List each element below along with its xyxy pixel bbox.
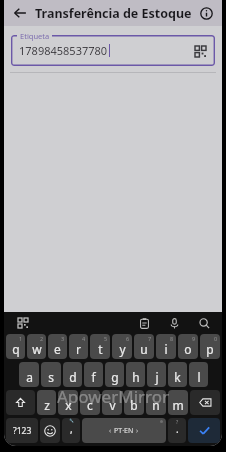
staticText: u <box>140 341 148 357</box>
staticText: 8 <box>170 335 174 342</box>
staticText: a <box>26 369 33 385</box>
staticText: w <box>32 341 42 357</box>
staticText: n <box>152 397 160 413</box>
staticText: 17898458537780 <box>19 43 108 58</box>
staticText: g <box>111 369 119 385</box>
staticText: 3 <box>61 335 65 342</box>
staticText: 6 <box>126 335 130 342</box>
staticText: c <box>87 397 93 413</box>
button[interactable]: d <box>63 362 82 387</box>
staticText: PT·EN <box>114 426 134 436</box>
button[interactable]: g <box>105 362 124 387</box>
staticText: Etiqueta <box>20 31 50 41</box>
button[interactable]: a <box>19 362 39 387</box>
button[interactable]: . <box>168 418 186 443</box>
button[interactable]: q <box>6 334 25 359</box>
staticText: 7 <box>148 335 152 342</box>
button[interactable]: l <box>189 362 208 387</box>
button[interactable]: h <box>126 362 145 387</box>
staticText: › <box>136 426 139 436</box>
button[interactable]: Voltar <box>10 3 30 23</box>
button[interactable]: Emoji <box>40 418 60 443</box>
button[interactable]: r <box>69 334 88 359</box>
staticText: , <box>70 422 73 436</box>
button[interactable]: o <box>178 334 198 359</box>
button[interactable]: Confirmar <box>188 418 220 443</box>
button[interactable]: Apagar <box>190 390 220 415</box>
button[interactable]: ?123 <box>6 418 38 443</box>
staticText: j <box>155 369 159 385</box>
button[interactable]: w <box>27 334 46 359</box>
staticText: 🔧 <box>69 418 74 423</box>
staticText: h <box>132 369 140 385</box>
staticText: q <box>12 341 20 357</box>
button[interactable]: t <box>90 334 110 359</box>
staticText: v <box>109 397 116 413</box>
button[interactable]: 17898458537780 <box>11 35 215 66</box>
staticText: p <box>206 341 214 357</box>
staticText: b <box>130 397 138 413</box>
button[interactable]: f <box>84 362 103 387</box>
staticText: 1 <box>19 335 23 342</box>
button[interactable]: n <box>146 390 166 415</box>
staticText: r <box>76 341 81 357</box>
staticText: f <box>91 369 96 385</box>
button[interactable]: j <box>147 362 166 387</box>
staticText: ? <box>176 419 179 426</box>
button[interactable]: x <box>58 390 78 415</box>
staticText: ApowerMirror <box>57 385 170 408</box>
staticText: y <box>119 341 126 357</box>
button[interactable]: u <box>134 334 154 359</box>
button[interactable]: c <box>80 390 100 415</box>
button[interactable]: i <box>156 334 176 359</box>
staticText: ?123 <box>13 425 32 437</box>
staticText: m <box>172 397 184 413</box>
button[interactable]: b <box>124 390 144 415</box>
staticText: 2 <box>40 335 44 342</box>
staticText: l <box>197 369 201 385</box>
button[interactable]: Pesquisar <box>196 315 212 331</box>
button[interactable]: p <box>200 334 220 359</box>
staticText: 0 <box>214 335 218 342</box>
staticText: d <box>69 369 77 385</box>
button[interactable]: v <box>102 390 122 415</box>
staticText: ‹ <box>109 426 112 436</box>
button[interactable]: y <box>112 334 132 359</box>
staticText: 5 <box>104 335 108 342</box>
button[interactable]: Shift <box>6 390 35 415</box>
button[interactable]: , <box>62 418 80 443</box>
button[interactable]: Espaço <box>82 418 166 443</box>
staticText: i <box>164 341 168 357</box>
button[interactable]: s <box>41 362 61 387</box>
button[interactable]: z <box>37 390 56 415</box>
button[interactable]: k <box>168 362 187 387</box>
staticText: s <box>48 369 54 385</box>
button[interactable]: Área de transferência <box>136 315 152 331</box>
staticText: e <box>54 341 61 357</box>
staticText: . <box>176 422 179 436</box>
button[interactable]: m <box>168 390 188 415</box>
staticText: k <box>174 369 181 385</box>
button[interactable]: e <box>48 334 67 359</box>
staticText: z <box>44 397 50 413</box>
button[interactable]: Teclado <box>14 314 32 332</box>
button[interactable]: Escanear código <box>192 43 208 59</box>
button[interactable]: Informações <box>196 3 216 23</box>
staticText: 4 <box>82 335 86 342</box>
staticText: t <box>98 341 103 357</box>
staticText: x <box>65 397 72 413</box>
staticText: Transferência de Estoque <box>35 5 192 22</box>
button[interactable]: Microfone <box>166 315 182 331</box>
staticText: 9 <box>192 335 196 342</box>
staticText: o <box>184 341 192 357</box>
